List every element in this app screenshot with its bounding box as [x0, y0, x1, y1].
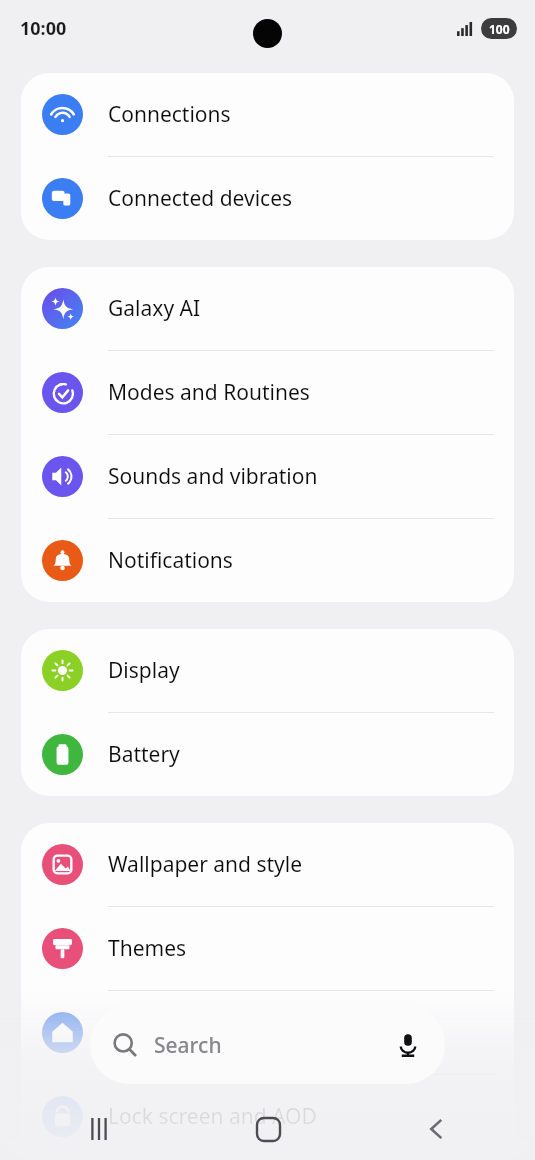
button[interactable]: Voice search: [385, 1022, 431, 1068]
staticText: Battery: [108, 740, 180, 769]
button[interactable]: Sounds and vibration: [21, 435, 514, 518]
staticText: Wallpaper and style: [108, 850, 303, 879]
button[interactable]: Display: [21, 629, 514, 712]
staticText: 10:00: [20, 16, 67, 41]
staticText: Themes: [108, 934, 187, 963]
staticText: Modes and Routines: [108, 378, 310, 407]
button[interactable]: Modes and Routines: [21, 351, 514, 434]
staticText: Lock screen and AOD: [108, 1102, 317, 1131]
button[interactable]: Recents: [72, 1102, 126, 1156]
staticText: Connected devices: [108, 184, 293, 213]
staticText: Search: [154, 1031, 222, 1060]
staticText: Connections: [108, 100, 231, 129]
staticText: Galaxy AI: [108, 294, 201, 323]
button[interactable]: Home: [241, 1102, 295, 1156]
button[interactable]: Connected devices: [21, 157, 514, 240]
button[interactable]: Home screen: [21, 991, 514, 1074]
button[interactable]: Connections: [21, 73, 514, 156]
staticText: Display: [108, 656, 180, 685]
button[interactable]: Notifications: [21, 519, 514, 602]
button[interactable]: Themes: [21, 907, 514, 990]
staticText: Sounds and vibration: [108, 462, 318, 491]
staticText: Home screen: [108, 1018, 239, 1047]
button[interactable]: Galaxy AI: [21, 267, 514, 350]
button[interactable]: Battery: [21, 713, 514, 796]
staticText: Notifications: [108, 546, 233, 575]
staticText: 100: [489, 21, 510, 37]
button[interactable]: Wallpaper and style: [21, 823, 514, 906]
button[interactable]: Lock screen and AOD: [21, 1075, 514, 1158]
button[interactable]: Search: [90, 1006, 445, 1084]
button[interactable]: Back: [410, 1102, 464, 1156]
